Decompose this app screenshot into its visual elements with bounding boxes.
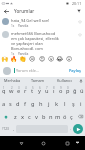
staticText: 1s [11, 24, 15, 28]
button[interactable]: c [26, 110, 33, 123]
button[interactable]: ü [78, 84, 85, 97]
button[interactable]: ş [69, 97, 77, 110]
staticText: 5 [32, 86, 34, 90]
staticText: 1 [3, 86, 5, 90]
button[interactable]: 0 [64, 84, 71, 97]
button[interactable]: i [77, 97, 85, 110]
staticText: r [24, 87, 27, 95]
button[interactable]: m [54, 110, 61, 123]
button[interactable]: Recents [62, 138, 73, 149]
button[interactable]: z [11, 110, 19, 123]
staticText: 3 [18, 86, 20, 90]
button[interactable]: React 6 [56, 54, 64, 62]
button[interactable]: Home [38, 138, 49, 149]
staticText: g [31, 100, 35, 108]
staticText: 0 [67, 86, 69, 90]
button[interactable]: f [21, 97, 29, 110]
button[interactable]: 7 [43, 84, 50, 97]
staticText: ?123 [2, 127, 9, 131]
button[interactable]: Like [76, 18, 83, 25]
staticText: 8 [53, 86, 55, 90]
button[interactable]: j [45, 97, 53, 110]
button[interactable]: Shift [0, 110, 11, 123]
button[interactable]: ğ [71, 84, 78, 97]
staticText: a [2, 100, 6, 108]
button[interactable]: 9 [57, 84, 64, 97]
staticText: y [38, 87, 41, 95]
staticText: 😮 [48, 55, 55, 62]
staticText: ş [72, 100, 75, 108]
staticText: t [31, 87, 34, 95]
button[interactable]: Merhaba [0, 77, 25, 84]
button[interactable]: React 7 [65, 54, 73, 62]
button[interactable]: ö [61, 110, 68, 123]
button[interactable]: ç [68, 110, 75, 123]
staticText: 4 [25, 86, 27, 90]
button[interactable]: Back [2, 7, 11, 16]
staticText: k [55, 100, 59, 108]
button[interactable]: n [47, 110, 54, 123]
staticText: 7 [46, 86, 48, 90]
button[interactable]: Like [76, 31, 83, 38]
button[interactable]: React 2 [19, 54, 27, 62]
button[interactable]: React 4 [38, 54, 46, 62]
button[interactable]: React 5 [47, 54, 55, 62]
staticText: hata_94 Gel well son! [11, 18, 50, 23]
button[interactable]: b [40, 110, 47, 123]
button[interactable]: Share [75, 7, 83, 15]
button[interactable]: v [33, 110, 40, 123]
button[interactable]: x [19, 110, 26, 123]
staticText: z [14, 113, 17, 121]
staticText: mehmet666 Bonushood em çok kapasitesi, e… [11, 31, 61, 51]
staticText: Paylaş [69, 68, 81, 73]
button[interactable]: a [0, 97, 7, 110]
button[interactable]: l [61, 97, 69, 110]
button[interactable]: React 1 [10, 54, 18, 62]
staticText: ğ [73, 87, 77, 95]
staticText: Tamam [31, 78, 45, 83]
button[interactable]: 3 [15, 84, 22, 97]
button[interactable]: k [53, 97, 61, 110]
staticText: Yanıtla [18, 52, 29, 56]
button[interactable]: Back [16, 138, 27, 149]
button[interactable]: 8 [50, 84, 57, 97]
button[interactable]: Kullanıcı [51, 77, 77, 84]
staticText: 2 [11, 86, 13, 90]
button[interactable]: React 3 [28, 54, 36, 62]
staticText: h [39, 100, 43, 108]
button[interactable]: g [29, 97, 37, 110]
staticText: Yorum ekle... [16, 68, 40, 73]
button[interactable]: d [14, 97, 21, 110]
button[interactable]: Voice input [77, 77, 85, 84]
staticText: ç [70, 113, 73, 121]
button[interactable]: 1 [0, 84, 8, 97]
button[interactable]: Backspace [75, 110, 85, 123]
button[interactable]: mehmet666 Bonushood em çok kapasitesi, e… [0, 31, 85, 56]
staticText: ü [80, 87, 84, 95]
button[interactable]: , [11, 123, 16, 135]
button[interactable]: s [7, 97, 14, 110]
staticText: c [28, 113, 31, 121]
button[interactable]: 5 [29, 84, 36, 97]
button[interactable]: hata_94 Gel well son! [0, 18, 85, 28]
staticText: e [17, 87, 21, 95]
staticText: s [9, 100, 12, 108]
button[interactable]: Tamam [25, 77, 51, 84]
button[interactable]: 6 [36, 84, 43, 97]
button[interactable]: React 0 [1, 54, 9, 62]
staticText: b [42, 113, 46, 121]
button[interactable]: h [37, 97, 45, 110]
staticText: 9 [60, 86, 62, 90]
staticText: 1s [11, 52, 15, 56]
button[interactable]: ?123 [0, 123, 11, 135]
staticText: q [2, 87, 6, 95]
button[interactable]: Paylaş [68, 67, 82, 74]
staticText: u [45, 87, 49, 95]
button[interactable]: Send [73, 124, 83, 134]
button[interactable]: 4 [22, 84, 29, 97]
button[interactable]: 2 [8, 84, 15, 97]
staticText: j [48, 100, 50, 108]
button[interactable]: Hide keyboard [73, 138, 82, 147]
